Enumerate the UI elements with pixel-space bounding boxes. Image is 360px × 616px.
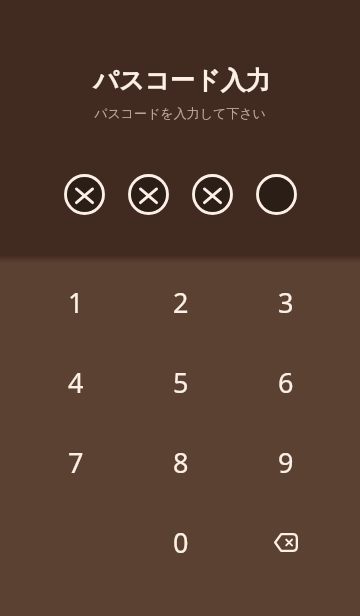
staticText: パスコード入力	[2, 65, 360, 96]
button[interactable]: Delete	[233, 502, 338, 582]
staticText: 5	[173, 364, 189, 401]
staticText: 1	[68, 284, 84, 321]
staticText: 9	[278, 444, 294, 481]
staticText: 6	[278, 364, 294, 401]
button[interactable]: 2	[128, 262, 233, 342]
button[interactable]: 7	[23, 422, 128, 502]
button[interactable]: 8	[128, 422, 233, 502]
button[interactable]: 0	[128, 502, 233, 582]
staticText: パスコードを入力して下さい	[0, 105, 360, 121]
staticText: 0	[173, 524, 189, 561]
staticText: 2	[173, 284, 189, 321]
staticText: 4	[68, 364, 84, 401]
staticText: 8	[173, 444, 189, 481]
button[interactable]: 5	[128, 342, 233, 422]
staticText: 3	[278, 284, 294, 321]
button[interactable]: 9	[233, 422, 338, 502]
button[interactable]: 1	[23, 262, 128, 342]
staticText: 7	[68, 444, 84, 481]
button[interactable]: 3	[233, 262, 338, 342]
button[interactable]: 6	[233, 342, 338, 422]
button[interactable]: 4	[23, 342, 128, 422]
